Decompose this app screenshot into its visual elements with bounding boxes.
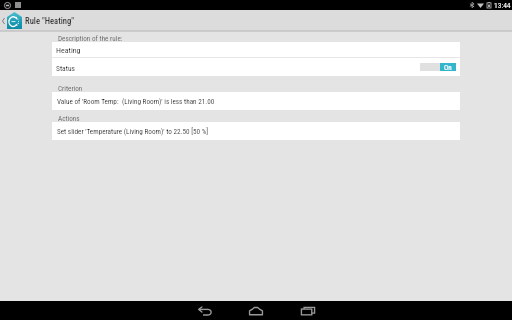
staticText: Criterion (58, 84, 83, 92)
staticText: Value of 'Room Temp: (Living Room)' is l… (57, 97, 215, 105)
staticText: Status (56, 64, 75, 73)
button[interactable]: Navigate up (0, 10, 7, 31)
staticText: Heating (56, 46, 81, 55)
staticText: 13:44 (494, 1, 511, 10)
staticText: Rule "Heating" (25, 16, 75, 26)
button[interactable]: Recent apps (281, 301, 335, 320)
button[interactable]: Set slider 'Temperature (Living Room)' t… (52, 122, 460, 140)
button[interactable]: Heating (52, 42, 460, 57)
staticText: Description of the rule: (58, 34, 123, 42)
staticText: Actions (58, 114, 80, 122)
button[interactable]: Back (178, 301, 232, 320)
button[interactable]: Value of 'Room Temp: (Living Room)' is l… (52, 92, 460, 110)
staticText: On (444, 64, 452, 72)
staticText: Set slider 'Temperature (Living Room)' t… (57, 127, 209, 135)
button[interactable]: Home (229, 301, 283, 320)
button[interactable]: Status (52, 58, 460, 76)
